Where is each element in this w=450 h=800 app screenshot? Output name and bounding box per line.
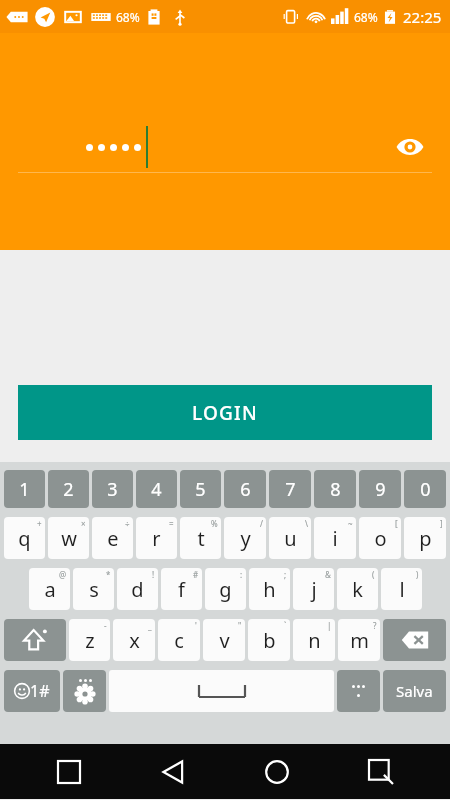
button[interactable]: Backspace xyxy=(383,619,446,661)
button[interactable]: 1 xyxy=(4,470,45,508)
staticText: 4 xyxy=(151,477,162,502)
button[interactable]: Back xyxy=(150,749,196,795)
staticText: f xyxy=(178,576,185,603)
button[interactable]: Home xyxy=(254,749,300,795)
button[interactable]: c xyxy=(158,619,200,661)
staticText: _ xyxy=(148,620,152,631)
staticText: 68% xyxy=(354,9,378,25)
staticText: u xyxy=(284,525,297,552)
staticText: \ xyxy=(305,518,308,529)
staticText: 7 xyxy=(285,477,296,502)
staticText: ÷ xyxy=(125,518,130,529)
button[interactable]: 1# xyxy=(4,670,60,712)
staticText: + xyxy=(37,518,42,529)
staticText: x xyxy=(129,627,140,654)
staticText: 2 xyxy=(63,477,74,502)
button[interactable]: e xyxy=(92,517,133,559)
button[interactable]: q xyxy=(4,517,45,559)
staticText: k xyxy=(352,576,363,603)
staticText: 6 xyxy=(240,477,251,502)
button[interactable]: h xyxy=(249,568,290,610)
button[interactable] xyxy=(337,670,380,712)
button[interactable]: o xyxy=(359,517,401,559)
button[interactable]: Recents xyxy=(46,749,92,795)
staticText: ( xyxy=(372,569,375,580)
staticText: j xyxy=(311,576,317,603)
button[interactable]: Salva xyxy=(383,670,446,712)
staticText: ? xyxy=(373,620,377,631)
button[interactable]: y xyxy=(224,517,266,559)
button[interactable]: x xyxy=(113,619,155,661)
button[interactable]: Settings xyxy=(63,670,106,712)
button[interactable]: b xyxy=(248,619,290,661)
staticText: @ xyxy=(59,569,67,580)
button[interactable]: 8 xyxy=(314,470,356,508)
staticText: / xyxy=(260,518,263,529)
button[interactable]: 6 xyxy=(224,470,266,508)
button[interactable]: f xyxy=(161,568,202,610)
staticText: | xyxy=(327,620,332,631)
staticText: [ xyxy=(395,518,398,529)
button[interactable]: 0 xyxy=(404,470,446,508)
staticText: v xyxy=(219,627,230,654)
staticText: w xyxy=(61,525,77,552)
staticText: # xyxy=(193,569,199,580)
staticText: ] xyxy=(440,518,443,529)
staticText: d xyxy=(131,576,144,603)
staticText: b xyxy=(263,627,276,654)
staticText: y xyxy=(240,525,251,552)
staticText: 8 xyxy=(330,477,341,502)
button[interactable]: 5 xyxy=(180,470,221,508)
button[interactable]: w xyxy=(48,517,89,559)
staticText: 0 xyxy=(420,477,431,502)
staticText: 5 xyxy=(195,477,206,502)
button[interactable]: 4 xyxy=(136,470,177,508)
button[interactable]: LOGIN xyxy=(18,385,432,440)
button[interactable]: 2 xyxy=(48,470,89,508)
staticText: t xyxy=(197,525,205,552)
button[interactable]: d xyxy=(117,568,158,610)
button[interactable]: z xyxy=(69,619,110,661)
button[interactable]: j xyxy=(293,568,334,610)
staticText: z xyxy=(85,627,95,654)
staticText: c xyxy=(174,627,184,654)
button[interactable]: Show password xyxy=(388,125,432,169)
button[interactable]: 9 xyxy=(359,470,401,508)
staticText: e xyxy=(107,525,119,552)
button[interactable]: i xyxy=(314,517,356,559)
staticText: ' xyxy=(195,620,197,631)
button[interactable]: g xyxy=(205,568,246,610)
staticText: " xyxy=(238,620,242,631)
button[interactable]: p xyxy=(404,517,446,559)
staticText: a xyxy=(44,576,56,603)
button[interactable]: v xyxy=(203,619,245,661)
staticText: ; xyxy=(284,569,287,580)
button[interactable]: l xyxy=(381,568,422,610)
staticText: : xyxy=(240,569,243,580)
button[interactable]: r xyxy=(136,517,177,559)
button[interactable]: 3 xyxy=(92,470,133,508)
staticText: s xyxy=(89,576,99,603)
button[interactable]: s xyxy=(73,568,114,610)
staticText: m xyxy=(350,627,369,654)
button[interactable]: a xyxy=(29,568,70,610)
staticText: p xyxy=(419,525,432,552)
staticText: q xyxy=(18,525,31,552)
staticText: 1 xyxy=(19,477,30,502)
button[interactable]: u xyxy=(269,517,311,559)
staticText: Salva xyxy=(396,681,433,701)
staticText: 68% xyxy=(116,9,140,25)
button[interactable]: k xyxy=(337,568,378,610)
staticText: × xyxy=(81,518,86,529)
staticText: 1# xyxy=(30,680,50,702)
button[interactable]: t xyxy=(180,517,221,559)
button[interactable]: 7 xyxy=(269,470,311,508)
button[interactable]: n xyxy=(293,619,335,661)
staticText: ! xyxy=(152,569,155,580)
staticText: 9 xyxy=(375,477,386,502)
button[interactable]: Space xyxy=(109,670,334,712)
button[interactable]: m xyxy=(338,619,380,661)
button[interactable]: Shift xyxy=(4,619,66,661)
staticText: i xyxy=(332,525,338,552)
button[interactable]: Search xyxy=(358,749,404,795)
